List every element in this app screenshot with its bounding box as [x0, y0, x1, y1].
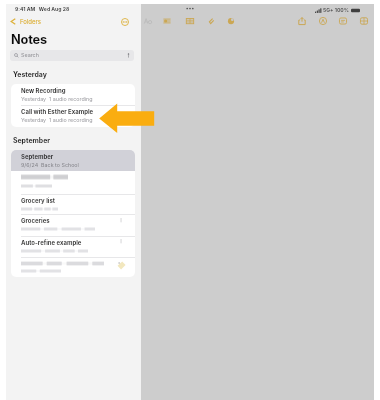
staticText: New Recording [21, 87, 66, 94]
button[interactable]: Text style [141, 14, 155, 28]
button[interactable]: Markup [160, 14, 174, 28]
button[interactable] [11, 105, 135, 127]
staticText: Notes [11, 32, 47, 47]
button[interactable]: Share [295, 14, 309, 28]
button[interactable]: Compose [336, 14, 350, 28]
button[interactable] [11, 171, 135, 194]
button[interactable] [11, 214, 135, 235]
staticText: Auto-refine example [21, 239, 82, 246]
button[interactable]: Search [10, 50, 134, 61]
staticText: Groceries [21, 217, 50, 224]
staticText: Search [21, 52, 39, 59]
staticText: Yesterday 1 audio recording [21, 96, 93, 102]
button[interactable] [11, 84, 135, 105]
staticText: September [13, 136, 51, 144]
button[interactable]: Record [224, 14, 238, 28]
button[interactable]: Table [183, 14, 197, 28]
staticText: 9/6/24 Back to School [21, 162, 79, 168]
staticText: 5G+ 100% [323, 7, 349, 13]
button[interactable]: Expand [357, 14, 371, 28]
staticText: Yesterday [13, 70, 47, 78]
staticText: Yesterday 1 audio recording [21, 117, 93, 123]
button[interactable] [11, 194, 135, 215]
button[interactable]: Attach [204, 14, 218, 28]
staticText: Folders [20, 18, 41, 25]
button[interactable]: Search [316, 14, 330, 28]
staticText: Call with Esther Example [21, 108, 94, 115]
button[interactable] [11, 236, 135, 257]
button[interactable] [11, 150, 135, 171]
staticText: Grocery list [21, 197, 55, 204]
button[interactable] [11, 257, 135, 277]
button[interactable]: More options [118, 15, 131, 28]
button[interactable]: Folders [8, 17, 43, 26]
staticText: September [21, 153, 54, 160]
staticText: 9:41 AM Wed Aug 28 [15, 6, 70, 12]
